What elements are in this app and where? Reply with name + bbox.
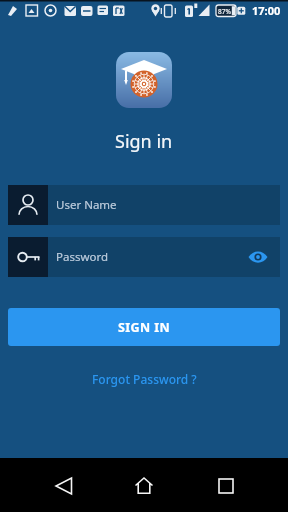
button[interactable] (96, 458, 192, 512)
button[interactable] (0, 458, 96, 512)
button[interactable] (244, 243, 272, 271)
button[interactable]: User Name (8, 185, 280, 225)
staticText: Sign in (115, 129, 173, 154)
button[interactable] (192, 458, 288, 512)
staticText: User Name (56, 197, 117, 213)
staticText: SIGN IN (118, 319, 171, 336)
staticText: 87% (218, 7, 231, 16)
staticText: Forgot Password ? (92, 371, 197, 387)
staticText: 17:00 (252, 3, 281, 18)
button[interactable]: SIGN IN (8, 308, 280, 346)
button[interactable]: Password (8, 237, 280, 277)
staticText: Password (56, 249, 109, 265)
button[interactable]: Forgot Password ? (88, 367, 201, 391)
